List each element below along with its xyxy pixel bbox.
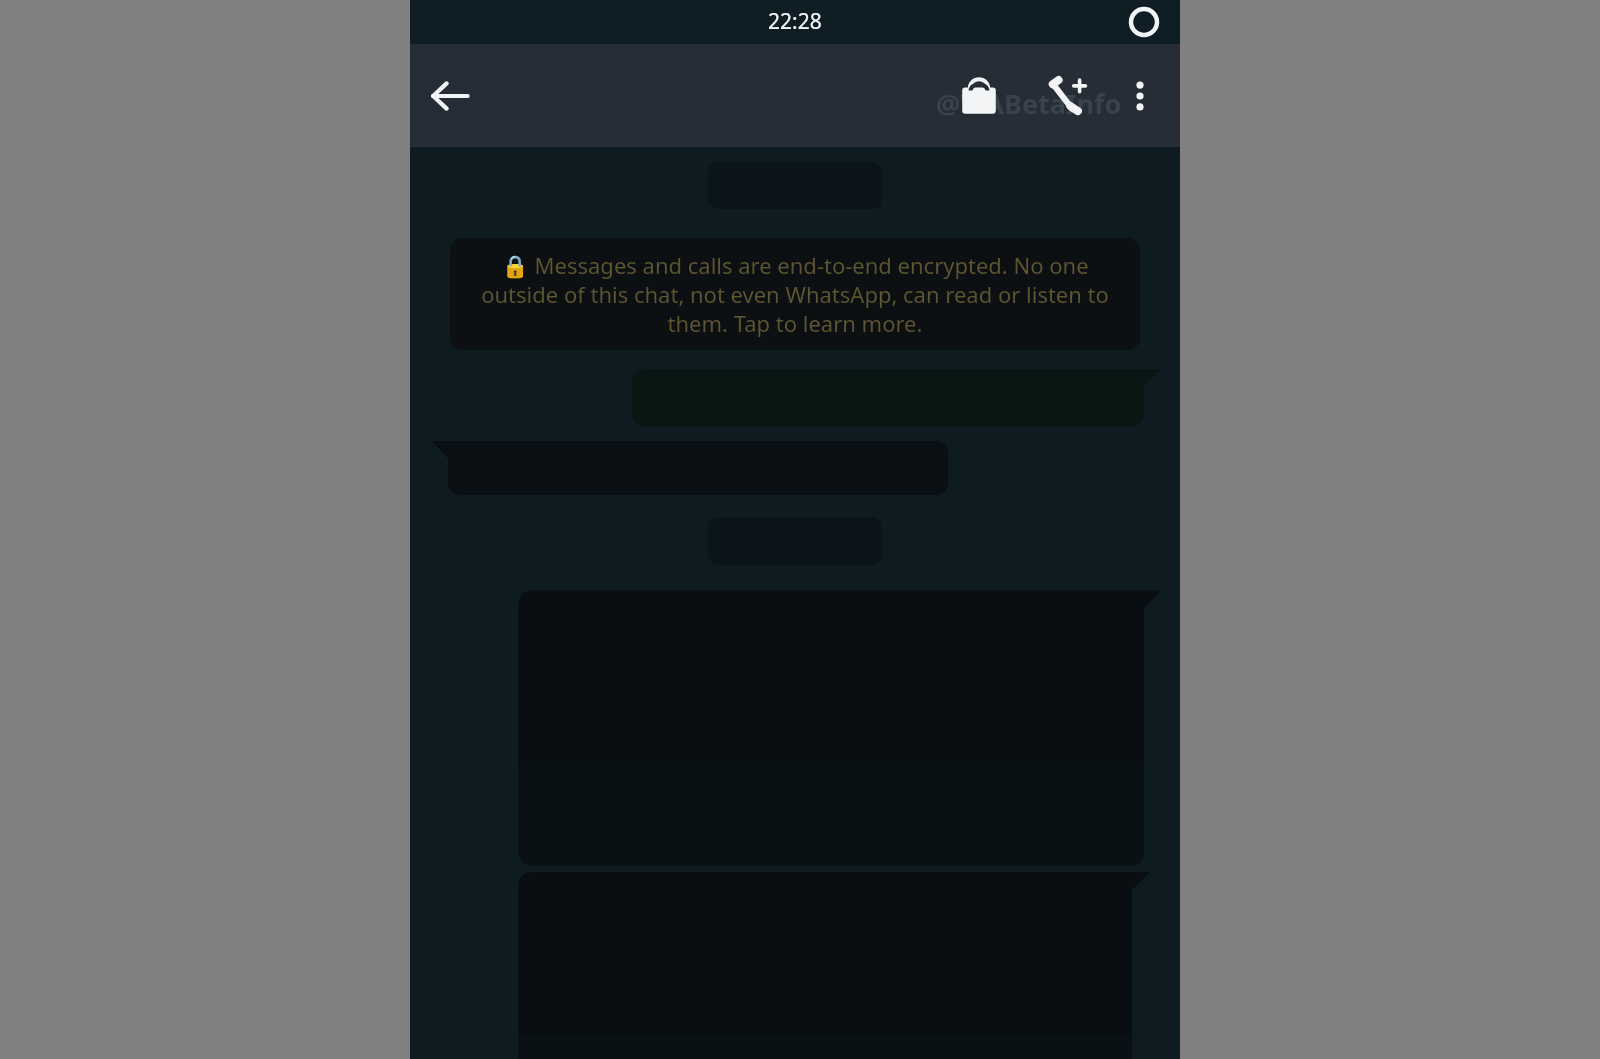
button[interactable]: Video call <box>1036 65 1098 127</box>
button[interactable]: More options <box>1112 68 1168 124</box>
staticText: 🔒 Messages and calls are end-to-end encr… <box>472 250 1118 338</box>
button[interactable]: Shop <box>948 65 1010 127</box>
staticText: @WABetaInfo <box>936 85 1122 122</box>
button[interactable]: 🔒 Messages and calls are end-to-end encr… <box>450 238 1140 350</box>
staticText: 22:28 <box>768 7 822 36</box>
button[interactable]: Back <box>420 66 480 126</box>
